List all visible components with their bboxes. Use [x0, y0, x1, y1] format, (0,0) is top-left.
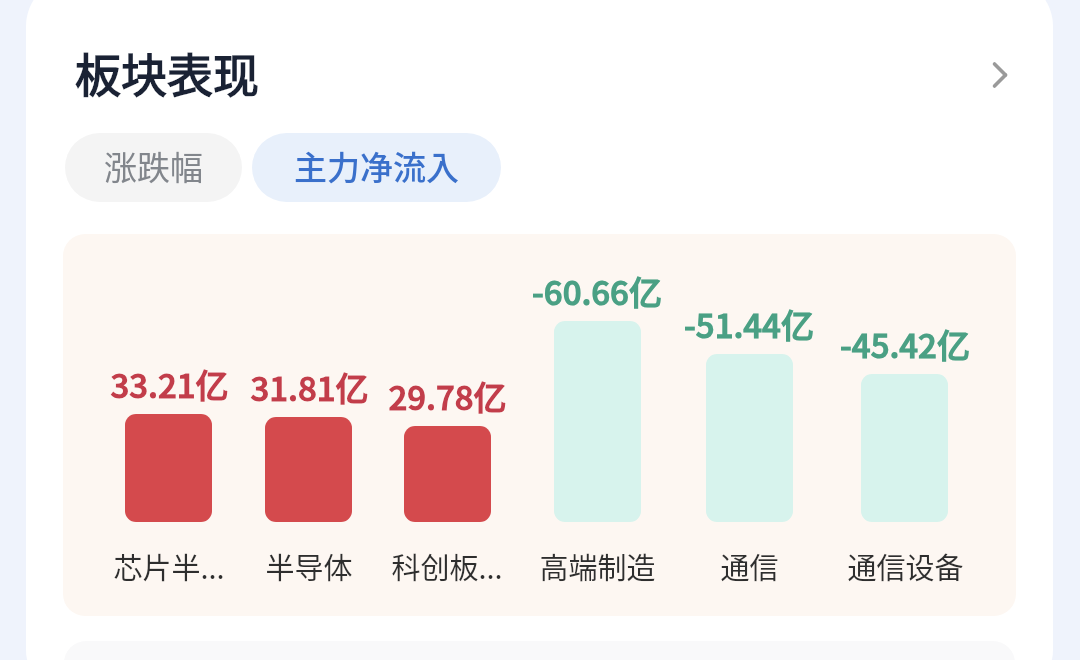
button[interactable]	[529, 320, 665, 585]
staticText: 主力净流入	[294, 142, 459, 190]
staticText: 31.81亿	[250, 363, 369, 411]
staticText: 高端制造	[539, 545, 656, 587]
staticText: 芯片半...	[113, 545, 225, 587]
staticText: -51.44亿	[684, 300, 814, 348]
staticText: 板块表现	[75, 39, 259, 106]
staticText: 29.78亿	[388, 372, 507, 420]
staticText: 半导体	[265, 545, 353, 587]
button[interactable]	[379, 320, 515, 585]
button[interactable]: 板块表现	[75, 39, 259, 106]
staticText: -60.66亿	[532, 267, 662, 315]
button[interactable]	[101, 320, 237, 585]
button[interactable]	[681, 320, 817, 585]
staticText: 33.21亿	[110, 360, 229, 408]
button[interactable]: 主力净流入	[252, 133, 501, 202]
staticText: 通信	[720, 545, 779, 587]
button[interactable]	[837, 320, 973, 585]
button[interactable]: 涨跌幅	[65, 133, 242, 202]
staticText: 涨跌幅	[104, 142, 203, 190]
staticText: -45.42亿	[840, 320, 970, 368]
button[interactable]: 查看更多板块表现	[974, 49, 1026, 101]
staticText: 科创板...	[391, 545, 503, 587]
staticText: 通信设备	[847, 545, 964, 587]
button[interactable]	[241, 320, 377, 585]
